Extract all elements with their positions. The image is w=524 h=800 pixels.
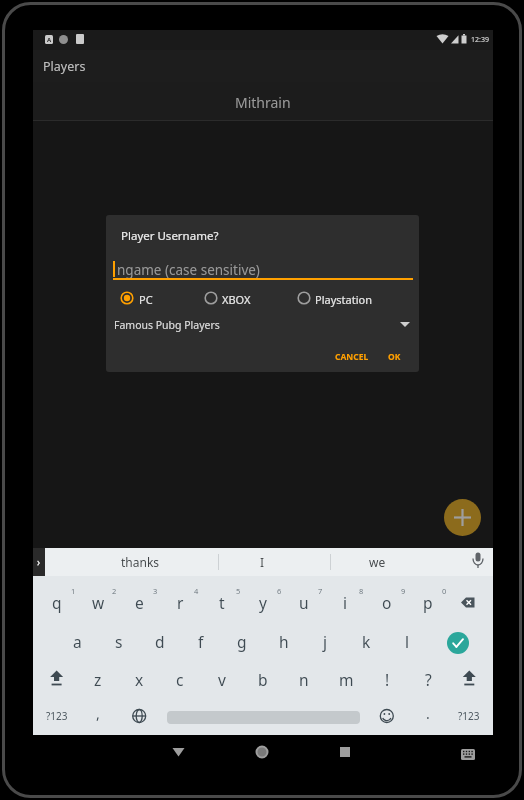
button[interactable]	[295, 288, 385, 308]
button[interactable]: o	[368, 585, 406, 619]
button[interactable]: !	[368, 662, 406, 696]
button[interactable]	[118, 288, 178, 308]
button[interactable]: f	[182, 624, 220, 658]
staticText: c	[176, 669, 184, 690]
staticText: h	[279, 631, 289, 652]
button[interactable]	[455, 590, 483, 614]
button[interactable]: q	[38, 585, 76, 619]
staticText: Playstation	[315, 292, 372, 307]
button[interactable]: a	[58, 624, 96, 658]
button[interactable]	[450, 662, 488, 696]
button[interactable]	[38, 662, 76, 696]
staticText: ›	[37, 555, 41, 569]
button[interactable]: OK	[377, 345, 411, 369]
staticText: w	[92, 592, 105, 613]
button[interactable]: ›	[33, 548, 45, 576]
button[interactable]: j	[306, 624, 344, 658]
staticText: s	[115, 631, 123, 652]
staticText: PC	[139, 292, 153, 307]
staticText: we	[369, 554, 386, 570]
button[interactable]: z	[79, 662, 117, 696]
button[interactable]	[328, 742, 352, 762]
button[interactable]	[250, 742, 274, 762]
button[interactable]: u	[285, 585, 323, 619]
staticText: OK	[388, 351, 401, 363]
staticText: ngame (case sensitive)	[117, 261, 260, 279]
staticText: 12:39	[471, 35, 489, 45]
button[interactable]: ?	[409, 662, 447, 696]
button[interactable]: t	[203, 585, 241, 619]
staticText: a	[73, 631, 82, 652]
staticText: CANCEL	[335, 351, 369, 363]
staticText: 4	[194, 586, 199, 596]
button[interactable]: thanks	[80, 548, 200, 576]
button[interactable]: CANCEL	[322, 345, 382, 369]
staticText: ,	[96, 704, 100, 723]
staticText: !	[385, 669, 390, 690]
button[interactable]: p	[409, 585, 447, 619]
button[interactable]	[456, 744, 480, 764]
button[interactable]	[113, 260, 413, 280]
staticText: x	[135, 669, 144, 690]
button[interactable]: ?123	[38, 700, 76, 732]
button[interactable]: r	[161, 585, 199, 619]
button[interactable]: g	[223, 624, 261, 658]
staticText: o	[382, 592, 392, 613]
staticText: 5	[236, 586, 241, 596]
button[interactable]: n	[285, 662, 323, 696]
staticText: 1	[71, 586, 76, 596]
button[interactable]: ,	[83, 697, 113, 729]
staticText: b	[258, 669, 268, 690]
staticText: v	[218, 669, 226, 690]
staticText: ?123	[458, 709, 480, 723]
button[interactable]: d	[141, 624, 179, 658]
button[interactable]: s	[100, 624, 138, 658]
button[interactable]: l	[388, 624, 426, 658]
staticText: u	[299, 592, 309, 613]
staticText: e	[135, 592, 144, 613]
button[interactable]: e	[120, 585, 158, 619]
staticText: 6	[277, 586, 282, 596]
button[interactable]: .	[413, 697, 443, 729]
button[interactable]: w	[79, 585, 117, 619]
button[interactable]: m	[327, 662, 365, 696]
button[interactable]	[202, 288, 272, 308]
button[interactable]	[127, 704, 152, 729]
staticText: d	[155, 631, 165, 652]
staticText: n	[299, 669, 309, 690]
button[interactable]: i	[326, 585, 364, 619]
button[interactable]: I	[202, 548, 322, 576]
button[interactable]	[113, 312, 413, 336]
button[interactable]	[33, 82, 493, 120]
button[interactable]	[374, 704, 399, 729]
button[interactable]: h	[265, 624, 303, 658]
button[interactable]	[447, 632, 469, 654]
button[interactable]: y	[244, 585, 282, 619]
button[interactable]: v	[203, 662, 241, 696]
staticText: 9	[401, 586, 406, 596]
button[interactable]	[166, 742, 190, 762]
button[interactable]: we	[317, 548, 437, 576]
staticText: I	[260, 554, 265, 570]
button[interactable]	[444, 499, 481, 536]
staticText: t	[219, 592, 225, 613]
button[interactable]: x	[120, 662, 158, 696]
staticText: 0	[442, 586, 447, 596]
staticText: Players	[43, 58, 86, 75]
staticText: i	[343, 592, 347, 613]
staticText: 8	[359, 586, 364, 596]
staticText: Player Username?	[121, 228, 219, 244]
staticText: y	[259, 592, 267, 613]
button[interactable]: b	[244, 662, 282, 696]
staticText: Famous Pubg Players	[114, 318, 220, 332]
staticText: .	[426, 704, 430, 723]
staticText: 7	[318, 586, 323, 596]
button[interactable]: ?123	[450, 700, 488, 732]
staticText: XBOX	[222, 292, 251, 307]
staticText: p	[423, 592, 433, 613]
button[interactable]: c	[161, 662, 199, 696]
button[interactable]: k	[347, 624, 385, 658]
staticText: g	[237, 631, 247, 652]
staticText: A	[47, 36, 52, 44]
